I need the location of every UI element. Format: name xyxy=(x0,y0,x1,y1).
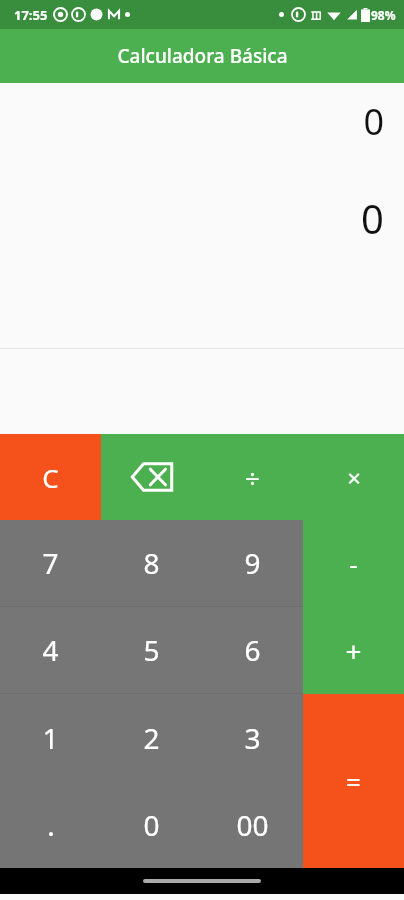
button[interactable]: 4 xyxy=(0,607,101,693)
staticText: + xyxy=(345,632,362,670)
staticText: 6 xyxy=(244,631,261,669)
button[interactable]: - xyxy=(303,520,404,607)
staticText: × xyxy=(347,461,361,494)
staticText: 3 xyxy=(244,719,261,757)
button[interactable]: × xyxy=(303,434,404,520)
staticText: 5 xyxy=(143,631,160,669)
staticText: 2 xyxy=(143,719,160,757)
button[interactable]: 6 xyxy=(202,607,303,693)
button[interactable]: 5 xyxy=(101,607,202,693)
button[interactable]: 2 xyxy=(101,694,202,781)
button[interactable]: Backspace xyxy=(101,434,202,520)
staticText: 4 xyxy=(42,631,59,669)
staticText: 9 xyxy=(244,544,261,582)
staticText: 7 xyxy=(42,544,59,582)
staticText: 98% xyxy=(371,7,396,23)
staticText: 17:55 xyxy=(14,6,48,24)
staticText: . xyxy=(47,806,55,844)
button[interactable]: . xyxy=(0,781,101,868)
button[interactable]: + xyxy=(303,607,404,694)
staticText: = xyxy=(346,764,361,799)
button[interactable]: C xyxy=(0,434,101,520)
button[interactable]: 9 xyxy=(202,520,303,606)
button[interactable]: 7 xyxy=(0,520,101,606)
staticText: ÷ xyxy=(245,460,260,495)
staticText: 0 xyxy=(363,97,384,146)
staticText: C xyxy=(42,460,59,495)
button[interactable]: = xyxy=(303,694,404,868)
button[interactable]: 0 xyxy=(101,781,202,868)
button[interactable]: ÷ xyxy=(202,434,303,520)
staticText: 8 xyxy=(143,544,160,582)
staticText: 0 xyxy=(361,191,384,245)
button[interactable]: 00 xyxy=(202,781,303,868)
button[interactable]: 8 xyxy=(101,520,202,606)
staticText: 1 xyxy=(42,719,59,757)
staticText: 00 xyxy=(236,806,269,844)
staticText: 0 xyxy=(143,806,160,844)
button[interactable]: 1 xyxy=(0,694,101,781)
staticText: Calculadora Básica xyxy=(117,43,288,69)
button[interactable]: 3 xyxy=(202,694,303,781)
staticText: - xyxy=(349,546,358,581)
